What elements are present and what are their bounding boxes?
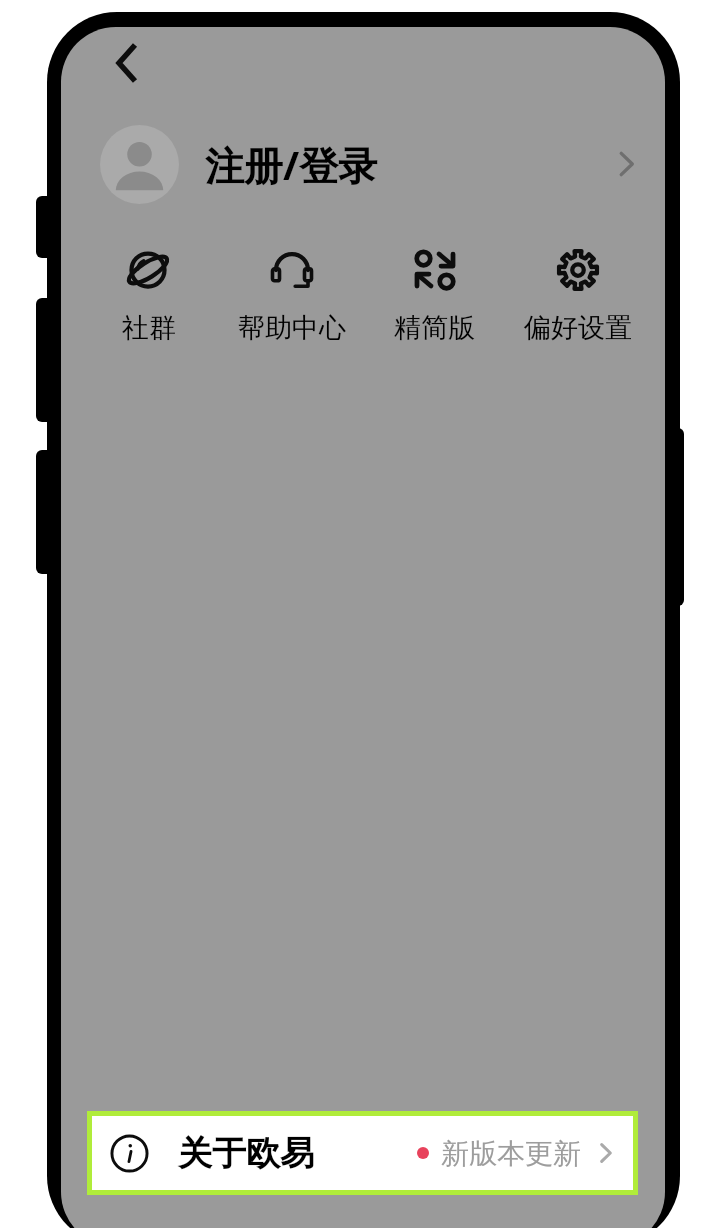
button[interactable]: 社群 — [77, 239, 220, 351]
staticText: 新版本更新 — [441, 1136, 581, 1171]
staticText: 偏好设置 — [524, 311, 632, 345]
staticText: 帮助中心 — [238, 311, 346, 345]
button[interactable]: 精简版 — [363, 239, 506, 351]
button[interactable]: Back — [95, 29, 161, 97]
staticText: 社群 — [122, 311, 176, 345]
button[interactable]: 注册/登录 — [61, 101, 665, 227]
button[interactable]: 偏好设置 — [506, 239, 649, 351]
button[interactable]: 帮助中心 — [220, 239, 363, 351]
staticText: 注册/登录 — [205, 138, 378, 191]
button[interactable]: 关于欧易 — [92, 1116, 633, 1190]
staticText: 关于欧易 — [178, 1132, 314, 1175]
staticText: 精简版 — [394, 311, 475, 345]
